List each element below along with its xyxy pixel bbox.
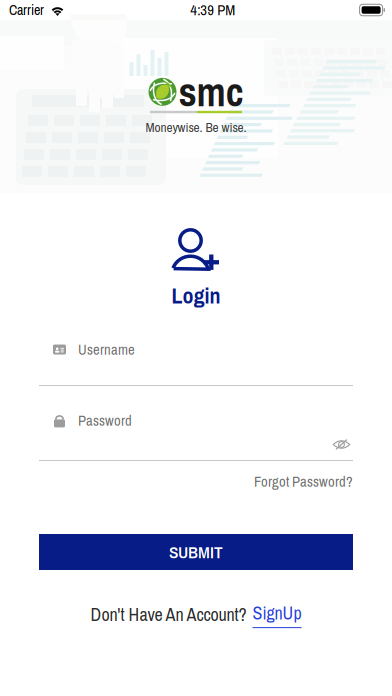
button[interactable]: SignUp [252,601,301,628]
staticText: SignUp [252,601,301,625]
button[interactable]: Forgot Password? [254,473,353,490]
button[interactable]: SUBMIT [39,534,353,570]
staticText: Login [171,281,220,310]
staticText: 4:39 PM [190,0,235,20]
staticText: SUBMIT [169,540,223,564]
staticText: smc [178,65,243,119]
button[interactable]: Show password [330,436,353,453]
staticText: Username [78,340,135,359]
staticText: Carrier [9,1,44,19]
staticText: Password [78,411,132,430]
staticText: Don't Have An Account? [90,602,246,627]
staticText: Moneywise. Be wise. [145,118,246,136]
staticText: Forgot Password? [254,472,353,491]
